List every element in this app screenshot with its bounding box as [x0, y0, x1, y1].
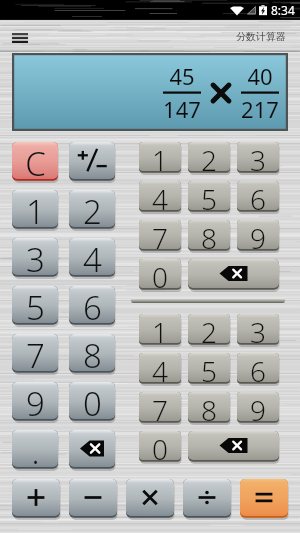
- staticText: 5: [26, 285, 45, 325]
- staticText: .: [31, 429, 40, 469]
- staticText: 9: [250, 219, 266, 251]
- staticText: 45: [169, 61, 195, 91]
- staticText: 8:34: [271, 2, 295, 18]
- staticText: 3: [250, 141, 266, 173]
- button[interactable]: 1: [139, 314, 181, 346]
- button[interactable]: 5: [188, 353, 230, 385]
- staticText: 2: [201, 313, 217, 345]
- staticText: 217: [241, 94, 279, 124]
- button[interactable]: 9: [237, 392, 279, 424]
- staticText: 7: [152, 219, 168, 251]
- button[interactable]: 3: [12, 238, 58, 278]
- button[interactable]: 7: [139, 220, 181, 252]
- staticText: 分数计算器: [236, 30, 286, 43]
- staticText: 2: [83, 189, 102, 229]
- button[interactable]: 8: [188, 392, 230, 424]
- button[interactable]: 6: [237, 353, 279, 385]
- staticText: 5: [201, 180, 217, 212]
- button[interactable]: Multiply: [126, 479, 174, 519]
- button[interactable]: 5: [188, 181, 230, 213]
- staticText: 6: [250, 352, 266, 384]
- button[interactable]: 2: [69, 190, 115, 230]
- button[interactable]: 4: [139, 353, 181, 385]
- button[interactable]: 2: [188, 314, 230, 346]
- button[interactable]: Backspace: [69, 430, 115, 470]
- button[interactable]: 6: [69, 286, 115, 326]
- button[interactable]: 3: [237, 142, 279, 174]
- button[interactable]: 4: [69, 238, 115, 278]
- staticText: 2: [201, 141, 217, 173]
- button[interactable]: Divide: [183, 479, 231, 519]
- button[interactable]: 5: [12, 286, 58, 326]
- button[interactable]: 7: [12, 334, 58, 374]
- staticText: 0: [152, 430, 168, 462]
- button[interactable]: Minus: [69, 479, 117, 519]
- button[interactable]: Equals: [240, 479, 288, 519]
- staticText: 1: [152, 313, 168, 345]
- button[interactable]: Plus: [12, 479, 60, 519]
- staticText: 40: [247, 61, 273, 91]
- button[interactable]: C: [12, 142, 58, 182]
- button[interactable]: 0: [139, 431, 181, 463]
- button[interactable]: 9: [12, 382, 58, 422]
- button[interactable]: Backspace: [188, 431, 279, 463]
- button[interactable]: 6: [237, 181, 279, 213]
- button[interactable]: Plus minus: [69, 142, 115, 182]
- staticText: 7: [26, 333, 45, 373]
- staticText: C: [25, 141, 46, 181]
- button[interactable]: 0: [69, 382, 115, 422]
- staticText: 1: [152, 141, 168, 173]
- button[interactable]: 1: [139, 142, 181, 174]
- staticText: 8: [201, 391, 217, 423]
- button[interactable]: 4: [139, 181, 181, 213]
- staticText: 147: [163, 94, 201, 124]
- staticText: 8: [201, 219, 217, 251]
- staticText: 9: [26, 381, 45, 421]
- staticText: 6: [83, 285, 102, 325]
- button[interactable]: 3: [237, 314, 279, 346]
- staticText: 0: [83, 381, 102, 421]
- button[interactable]: 7: [139, 392, 181, 424]
- button[interactable]: 1: [12, 190, 58, 230]
- button[interactable]: 8: [188, 220, 230, 252]
- button[interactable]: .: [12, 430, 58, 470]
- button[interactable]: Backspace: [188, 259, 279, 291]
- staticText: 3: [250, 313, 266, 345]
- staticText: 5: [201, 352, 217, 384]
- staticText: 8: [83, 333, 102, 373]
- staticText: 3: [26, 237, 45, 277]
- staticText: 7: [152, 391, 168, 423]
- staticText: 9: [250, 391, 266, 423]
- staticText: 4: [152, 180, 168, 212]
- staticText: 1: [26, 189, 45, 229]
- staticText: 4: [152, 352, 168, 384]
- button[interactable]: Menu: [4, 20, 36, 52]
- button[interactable]: 2: [188, 142, 230, 174]
- staticText: 4: [83, 237, 102, 277]
- button[interactable]: 0: [139, 259, 181, 291]
- button[interactable]: 9: [237, 220, 279, 252]
- button[interactable]: 8: [69, 334, 115, 374]
- staticText: 6: [250, 180, 266, 212]
- staticText: 0: [152, 258, 168, 290]
